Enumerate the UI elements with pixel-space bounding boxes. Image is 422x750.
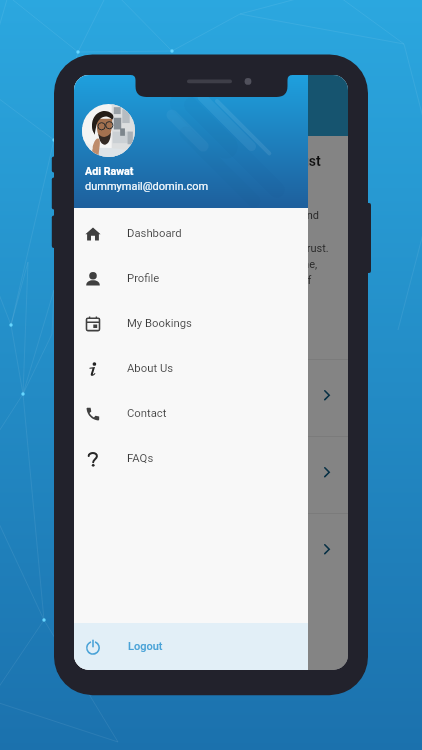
staticText: Profile xyxy=(127,272,160,285)
staticText: Adi Rawat xyxy=(85,165,134,178)
button[interactable] xyxy=(74,359,348,436)
button[interactable]: Logout xyxy=(74,623,308,670)
button[interactable] xyxy=(74,436,348,513)
button[interactable]: My Bookings xyxy=(74,301,308,346)
staticText: Logout xyxy=(128,640,163,653)
staticText: My Bookings xyxy=(127,317,192,330)
staticText: FAQs xyxy=(127,452,154,465)
staticText: Contact xyxy=(127,407,167,420)
button[interactable]: Contact xyxy=(74,391,308,436)
staticText: About Us xyxy=(127,362,174,375)
button[interactable] xyxy=(74,513,348,590)
button[interactable]: FAQs xyxy=(74,436,308,481)
staticText: Dashboard xyxy=(127,227,182,240)
button[interactable]: Dashboard xyxy=(74,211,308,256)
staticText: We are widely known for delivering trust… xyxy=(92,209,329,302)
button[interactable]: Profile xyxy=(74,256,308,301)
staticText: dummymail@domin.com xyxy=(85,180,209,193)
button[interactable]: About Us xyxy=(74,346,308,391)
staticText: Why Choose Us? We Earn Your Trust xyxy=(92,153,321,169)
